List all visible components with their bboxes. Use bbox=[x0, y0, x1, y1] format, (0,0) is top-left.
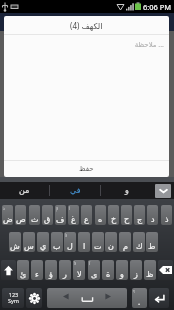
button[interactable]: ء bbox=[31, 260, 43, 280]
staticText: م bbox=[123, 242, 128, 251]
staticText: ا bbox=[83, 242, 86, 251]
staticText: لأ bbox=[65, 233, 68, 238]
staticText: ئ bbox=[20, 270, 27, 279]
button[interactable]: ؟ bbox=[132, 288, 147, 308]
staticText: ؟ bbox=[133, 289, 136, 294]
button[interactable]: ظ bbox=[144, 260, 156, 280]
staticText: ر bbox=[63, 270, 67, 279]
button[interactable]: ت bbox=[92, 232, 104, 252]
button[interactable]: ع bbox=[81, 205, 92, 225]
staticText: ذ bbox=[165, 215, 169, 224]
staticText: ى bbox=[91, 270, 98, 279]
staticText: ز bbox=[134, 270, 138, 279]
staticText: آ bbox=[89, 261, 91, 266]
button[interactable]: 123 Sym bbox=[2, 288, 24, 308]
staticText: ل bbox=[67, 242, 73, 251]
staticText: ن bbox=[108, 242, 114, 251]
button[interactable]: ر bbox=[59, 260, 71, 280]
staticText: ف bbox=[56, 215, 65, 224]
staticText: 6:06 PM bbox=[143, 2, 172, 12]
staticText: لا bbox=[77, 270, 82, 279]
button[interactable]: ز bbox=[130, 260, 142, 280]
button[interactable]: لإ bbox=[55, 205, 66, 225]
staticText: د bbox=[151, 215, 155, 224]
staticText: ث bbox=[31, 215, 39, 224]
staticText: الكهف (4) bbox=[70, 20, 103, 31]
staticText: ح bbox=[124, 215, 130, 224]
button[interactable]: Space bbox=[47, 288, 127, 308]
button[interactable]: ش bbox=[9, 232, 21, 252]
button[interactable]: و bbox=[116, 260, 128, 280]
staticText: ض bbox=[3, 215, 13, 224]
button[interactable]: Backspace bbox=[158, 260, 173, 280]
button[interactable]: ئ bbox=[17, 260, 29, 280]
button[interactable]: آ bbox=[88, 260, 100, 280]
button[interactable]: س bbox=[23, 232, 35, 252]
button[interactable]: ذ bbox=[2, 205, 13, 225]
staticText: ذ bbox=[3, 206, 5, 211]
staticText: في bbox=[70, 186, 81, 195]
staticText: من bbox=[19, 186, 30, 195]
button[interactable]: خ bbox=[108, 205, 119, 225]
staticText: ظ bbox=[146, 270, 154, 279]
staticText: ج bbox=[137, 215, 143, 224]
button[interactable]: Enter bbox=[149, 288, 169, 308]
button[interactable]: ي bbox=[37, 232, 49, 252]
staticText: ت bbox=[94, 242, 102, 251]
button[interactable]: ق bbox=[42, 205, 53, 225]
staticText: و bbox=[120, 270, 124, 279]
button[interactable]: لأ bbox=[64, 232, 76, 252]
button[interactable]: ة bbox=[102, 260, 114, 280]
staticText: غ bbox=[71, 215, 76, 224]
button[interactable]: ب bbox=[51, 232, 63, 252]
staticText: حفظ bbox=[79, 165, 94, 173]
staticText: ك bbox=[136, 242, 143, 251]
staticText: ب bbox=[53, 242, 61, 251]
button[interactable]: More suggestions bbox=[155, 184, 171, 198]
staticText: 123 Sym bbox=[8, 291, 19, 305]
button[interactable]: ن bbox=[105, 232, 117, 252]
staticText: ص bbox=[16, 215, 26, 224]
button[interactable]: Shift bbox=[1, 260, 16, 280]
button[interactable]: ك bbox=[133, 232, 145, 252]
staticText: ة bbox=[106, 270, 111, 279]
button[interactable]: أ bbox=[68, 205, 79, 225]
button[interactable]: ص bbox=[15, 205, 26, 225]
button[interactable]: لآ bbox=[73, 260, 85, 280]
button[interactable]: د bbox=[147, 205, 158, 225]
staticText: لآ bbox=[74, 261, 77, 266]
staticText: ش bbox=[10, 242, 20, 251]
staticText: ه bbox=[98, 215, 103, 224]
button[interactable]: حفظ bbox=[4, 161, 169, 177]
staticText: ع bbox=[84, 215, 89, 224]
staticText: لإ bbox=[56, 206, 59, 211]
staticText: ء bbox=[35, 270, 39, 279]
button[interactable]: ح bbox=[121, 205, 132, 225]
staticText: ؤ bbox=[49, 270, 53, 279]
button[interactable]: ث bbox=[29, 205, 40, 225]
button[interactable]: في bbox=[50, 182, 101, 199]
staticText: أ bbox=[69, 206, 71, 211]
button[interactable]: و bbox=[101, 182, 153, 199]
staticText: . bbox=[138, 296, 141, 307]
staticText: خ bbox=[111, 215, 117, 224]
staticText: ط bbox=[148, 242, 156, 251]
staticText: س bbox=[24, 242, 34, 251]
staticText: ملاحظة ... bbox=[4, 40, 164, 50]
button[interactable]: ا bbox=[78, 232, 90, 252]
button[interactable]: ج bbox=[134, 205, 145, 225]
button[interactable]: ذ bbox=[161, 205, 172, 225]
staticText: ي bbox=[40, 242, 47, 251]
button[interactable]: Settings bbox=[26, 288, 42, 308]
button[interactable]: م bbox=[119, 232, 131, 252]
staticText: و bbox=[125, 186, 129, 195]
button[interactable]: ؤ bbox=[45, 260, 57, 280]
button[interactable]: من bbox=[0, 182, 49, 199]
button[interactable]: ه bbox=[95, 205, 106, 225]
button[interactable]: ط bbox=[146, 232, 158, 252]
staticText: ق bbox=[44, 215, 51, 224]
